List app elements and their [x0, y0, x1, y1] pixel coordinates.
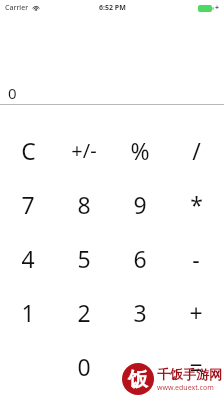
- button[interactable]: 0: [0, 82, 224, 105]
- staticText: 6:52 PM: [99, 3, 126, 13]
- staticText: 千饭手游网: [157, 366, 222, 382]
- staticText: 6: [133, 243, 147, 274]
- staticText: +/-: [71, 137, 97, 164]
- button[interactable]: +/-: [56, 123, 112, 177]
- button[interactable]: 1: [0, 285, 56, 339]
- staticText: 8: [77, 189, 91, 220]
- staticText: 3: [133, 297, 147, 328]
- staticText: 5: [77, 243, 91, 274]
- staticText: Carrier: [5, 3, 29, 13]
- button[interactable]: /: [168, 123, 224, 177]
- button[interactable]: 3: [112, 285, 168, 339]
- button[interactable]: %: [112, 123, 168, 177]
- button[interactable]: C: [0, 123, 56, 177]
- staticText: %: [130, 135, 150, 166]
- staticText: 2: [77, 297, 91, 328]
- button[interactable]: 5: [56, 231, 112, 285]
- button[interactable]: 0: [56, 339, 112, 393]
- button[interactable]: +: [168, 285, 224, 339]
- button[interactable]: =: [168, 339, 224, 393]
- staticText: 4: [21, 243, 35, 274]
- staticText: 9: [133, 189, 147, 220]
- button[interactable]: *: [168, 177, 224, 231]
- staticText: -: [192, 243, 200, 274]
- staticText: 0: [77, 351, 91, 382]
- button[interactable]: 7: [0, 177, 56, 231]
- staticText: 0: [8, 83, 17, 103]
- button[interactable]: 4: [0, 231, 56, 285]
- button[interactable]: -: [168, 231, 224, 285]
- staticText: C: [21, 135, 36, 166]
- button[interactable]: 9: [112, 177, 168, 231]
- staticText: /: [192, 135, 201, 166]
- staticText: www.eduext.com: [157, 383, 214, 393]
- staticText: *: [190, 189, 203, 220]
- staticText: +: [215, 3, 220, 13]
- staticText: =: [189, 351, 203, 382]
- staticText: +: [189, 297, 203, 328]
- staticText: 1: [21, 297, 35, 328]
- button[interactable]: 8: [56, 177, 112, 231]
- button[interactable]: 6: [112, 231, 168, 285]
- staticText: 7: [21, 189, 35, 220]
- staticText: 饭: [128, 367, 148, 392]
- button[interactable]: 2: [56, 285, 112, 339]
